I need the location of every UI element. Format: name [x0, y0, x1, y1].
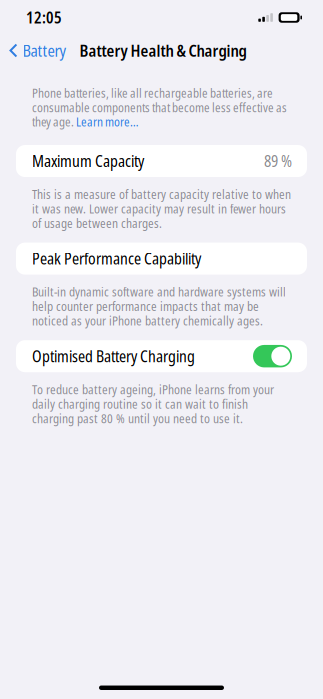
staticText: Optimised Battery Charging [32, 346, 195, 367]
button[interactable]: Battery [0, 35, 66, 66]
button[interactable]: Learn more… [76, 114, 139, 130]
staticText: Peak Performance Capability [32, 248, 201, 269]
staticText: 89 % [264, 150, 292, 172]
staticText: Phone batteries, like all rechargeable b… [32, 85, 287, 130]
staticText: To reduce battery ageing, iPhone learns … [32, 381, 274, 427]
button[interactable]: Optimised Battery Charging [0, 340, 307, 372]
staticText: Learn more… [76, 114, 139, 130]
button[interactable]: Optimised Battery Charging [253, 345, 292, 367]
staticText: This is a measure of battery capacity re… [32, 186, 291, 232]
staticText: Battery Health & Charging [79, 40, 246, 61]
staticText: Maximum Capacity [32, 150, 144, 172]
staticText: Battery [22, 40, 66, 61]
staticText: Built-in dynamic software and hardware s… [32, 284, 286, 329]
button[interactable]: Maximum Capacity [0, 145, 307, 177]
staticText: 12:05 [26, 7, 62, 28]
button[interactable]: Peak Performance Capability [0, 243, 307, 275]
